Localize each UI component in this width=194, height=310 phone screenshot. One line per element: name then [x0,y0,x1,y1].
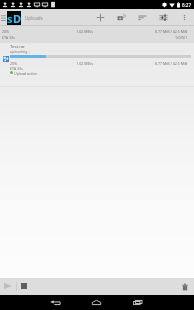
button[interactable]: Upload file [111,9,132,26]
staticText: 8.77 MiB / 42.5 MiB [155,61,188,66]
button[interactable]: Stop [17,278,30,295]
button[interactable]: Settings [153,9,174,26]
button[interactable]: More options [174,9,194,26]
button[interactable]: Start [0,278,16,295]
staticText: 20% [2,29,10,34]
staticText: D [13,11,21,25]
staticText: ETA 33s [10,66,23,71]
button[interactable]: Add [90,9,111,26]
staticText: Uploads [25,15,43,21]
staticText: 1.02 MB/s [40,61,93,66]
staticText: s [7,11,13,25]
staticText: 1.02 MB/s [40,29,93,34]
staticText: 1/0/0/1 [175,35,188,40]
button[interactable]: Back [36,295,76,310]
button[interactable]: Home [76,295,117,310]
button[interactable]: Sort [132,9,153,26]
staticText: Upload active [14,71,37,76]
button[interactable]: Delete [178,278,194,295]
button[interactable]: Navigate up [0,9,43,26]
button[interactable]: Test.rar [0,43,194,87]
staticText: 8.77 MiB / 42.5 MiB [155,29,188,34]
button[interactable]: Recents [117,295,158,310]
staticText: uploading… [10,49,30,54]
staticText: 20% [10,61,18,66]
staticText: ETA 33s [2,35,15,40]
staticText: Test.rar [10,43,26,49]
staticText: 6:27 [182,2,192,8]
